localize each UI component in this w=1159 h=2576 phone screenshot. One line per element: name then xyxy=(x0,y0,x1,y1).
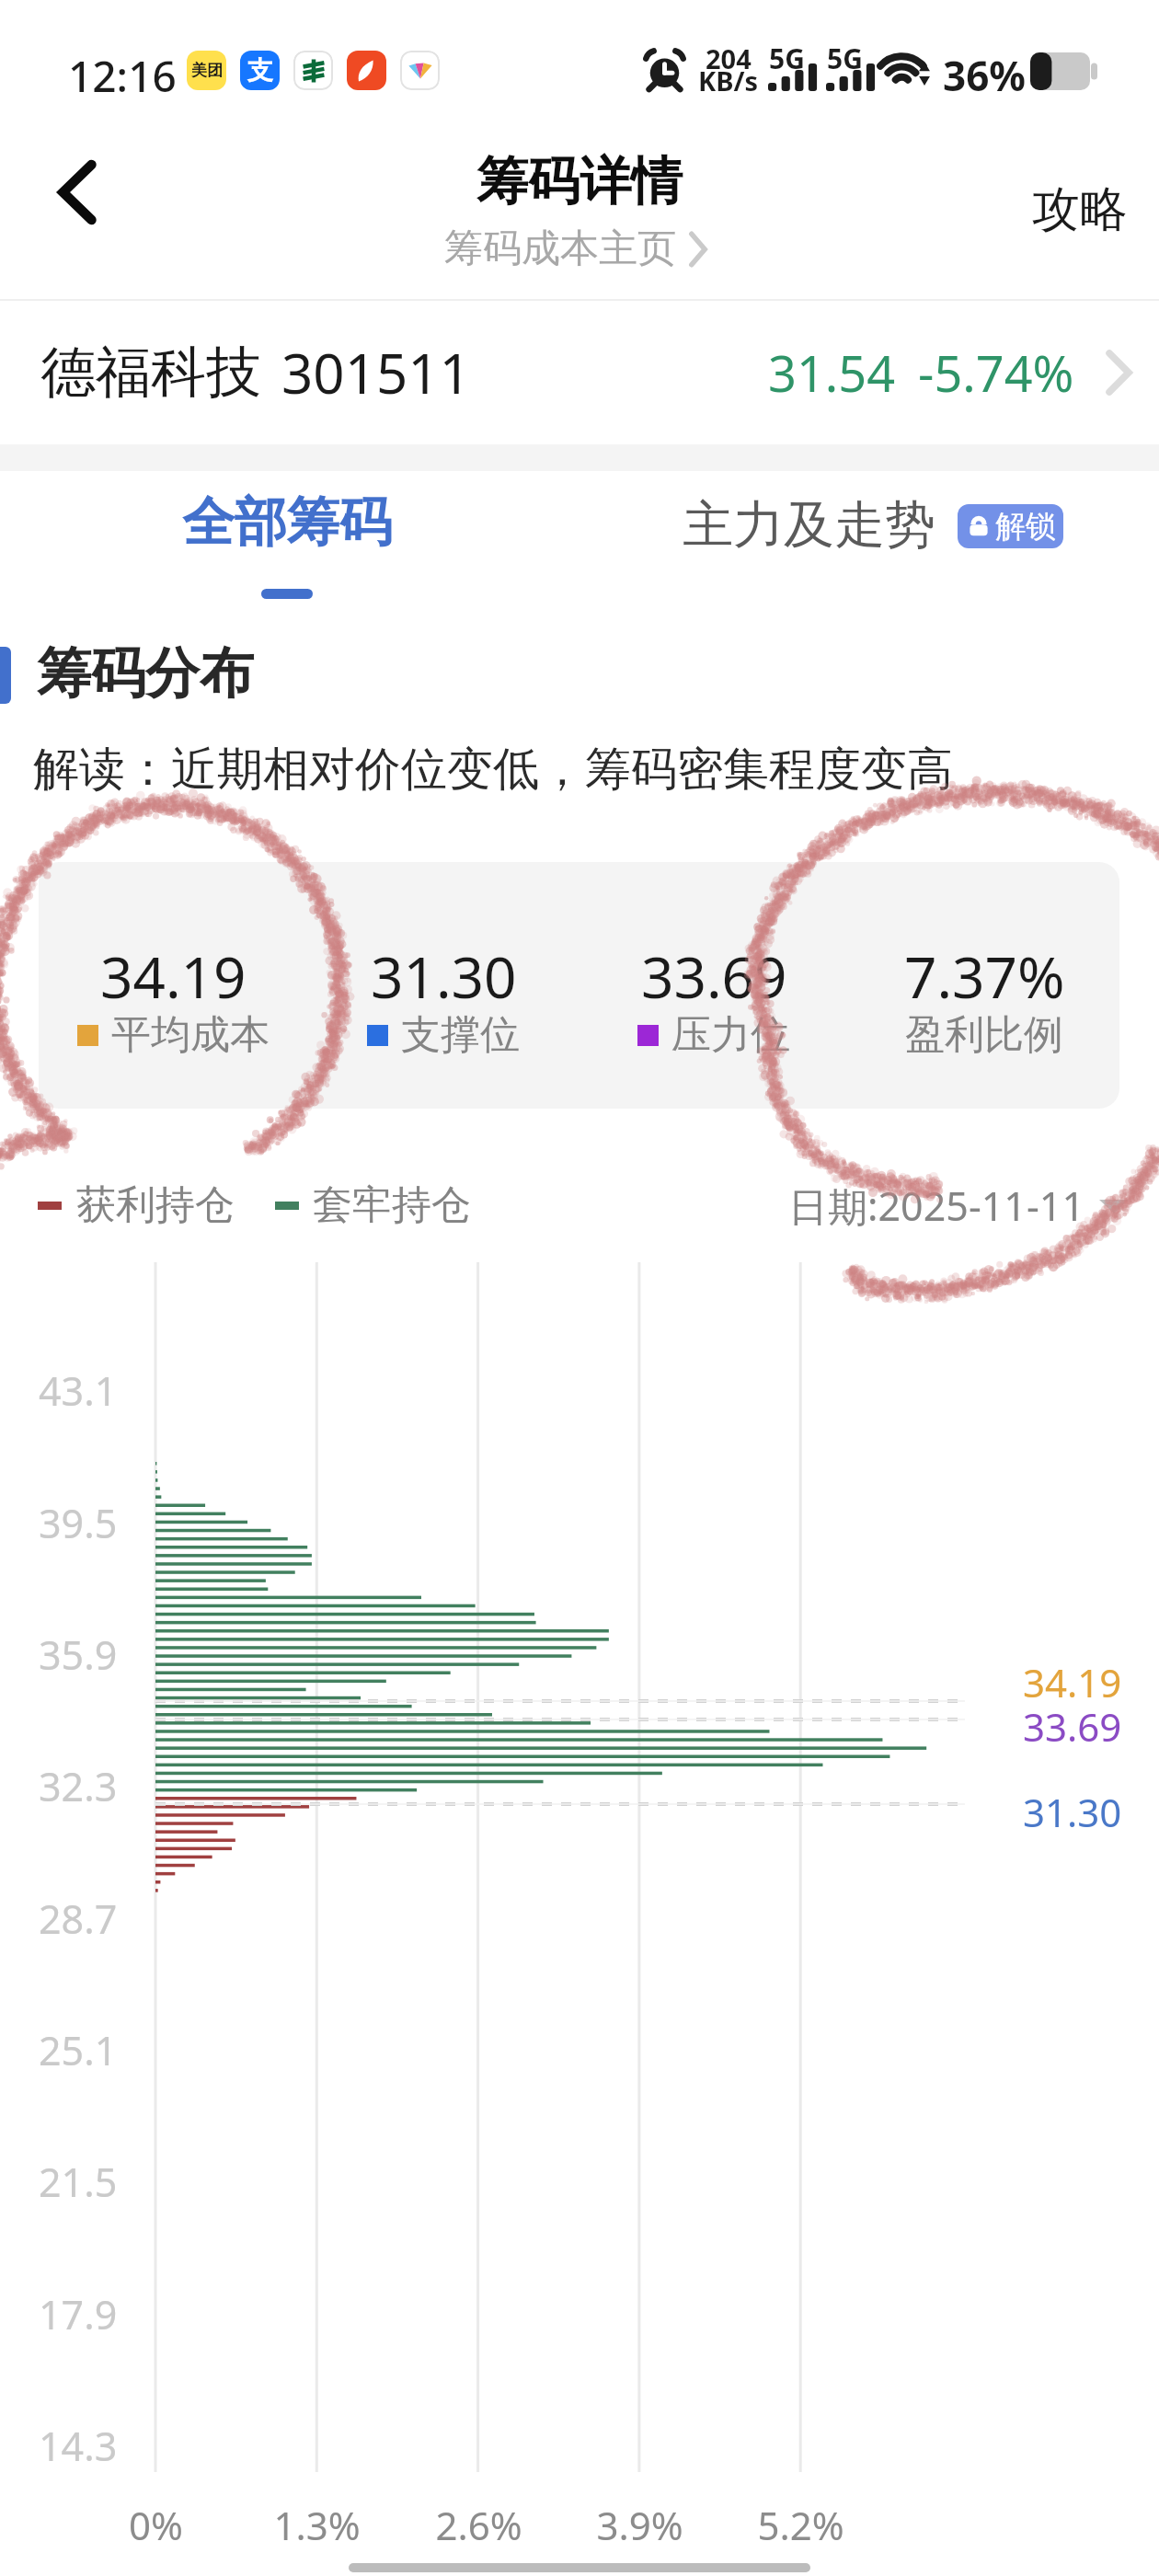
staticText: 支 xyxy=(247,54,273,86)
staticText: 33.69 xyxy=(1023,1700,1122,1753)
staticText: 日期:2025-11-11 xyxy=(788,1179,1084,1233)
staticText: 12:16 xyxy=(68,47,177,105)
staticText: -5.74% xyxy=(918,339,1074,407)
staticText: 28.7 xyxy=(39,1892,118,1946)
staticText: 解锁 xyxy=(995,507,1056,546)
button[interactable]: 主力及走势 xyxy=(644,471,1096,607)
staticText: 筹码分布 xyxy=(37,639,254,707)
button[interactable]: 34.19 xyxy=(39,862,1119,1109)
staticText: 301511 xyxy=(281,335,471,410)
staticText: 39.5 xyxy=(39,1496,118,1550)
staticText: 主力及走势 xyxy=(683,493,935,557)
staticText: 1.3% xyxy=(273,2499,361,2551)
staticText: 解读：近期相对价位变低，筹码密集程度变高 xyxy=(33,741,953,799)
button[interactable]: Back xyxy=(22,137,132,247)
staticText: 34.19 xyxy=(100,937,247,1015)
staticText: 204 xyxy=(706,40,752,76)
staticText: 31.30 xyxy=(1023,1786,1122,1838)
staticText: 7.37% xyxy=(904,937,1065,1015)
staticText: 2.6% xyxy=(435,2499,522,2551)
button[interactable]: 攻略 xyxy=(1023,167,1137,253)
staticText: 36% xyxy=(943,48,1027,103)
staticText: 美团 xyxy=(191,61,223,80)
staticText: 套牢持仓 xyxy=(313,1180,471,1230)
button[interactable]: 德福科技 xyxy=(0,301,1159,444)
staticText: 5G xyxy=(769,40,805,77)
staticText: 31.54 xyxy=(768,339,896,407)
staticText: 5G xyxy=(827,40,863,77)
staticText: 35.9 xyxy=(39,1627,118,1682)
staticText: 筹码成本主页 xyxy=(444,224,676,273)
staticText: 3.9% xyxy=(596,2499,683,2551)
staticText: 支撑位 xyxy=(401,1010,520,1060)
staticText: 33.69 xyxy=(641,937,787,1015)
staticText: 31.30 xyxy=(371,937,517,1015)
button[interactable]: 全部筹码 xyxy=(120,471,454,607)
staticText: 14.3 xyxy=(39,2419,118,2473)
staticText: 34.19 xyxy=(1023,1656,1122,1708)
staticText: 全部筹码 xyxy=(182,489,392,556)
staticText: 德福科技 xyxy=(40,338,261,408)
button[interactable]: 日期:2025-11-11 xyxy=(788,1179,1129,1233)
staticText: 0% xyxy=(129,2499,183,2551)
staticText: 21.5 xyxy=(39,2155,118,2209)
staticText: 攻略 xyxy=(1032,179,1128,240)
staticText: KB/s xyxy=(698,63,759,98)
staticText: 25.1 xyxy=(39,2023,118,2077)
staticText: 获利持仓 xyxy=(76,1180,235,1230)
staticText: 32.3 xyxy=(39,1759,118,1813)
staticText: 43.1 xyxy=(39,1363,118,1418)
staticText: 盈利比例 xyxy=(905,1010,1063,1060)
staticText: 平均成本 xyxy=(111,1010,270,1060)
staticText: 17.9 xyxy=(39,2287,118,2341)
button[interactable]: 筹码成本主页 xyxy=(433,217,717,281)
staticText: 压力位 xyxy=(671,1010,790,1060)
staticText: 5.2% xyxy=(757,2499,844,2551)
staticText: 筹码详情 xyxy=(476,149,683,214)
